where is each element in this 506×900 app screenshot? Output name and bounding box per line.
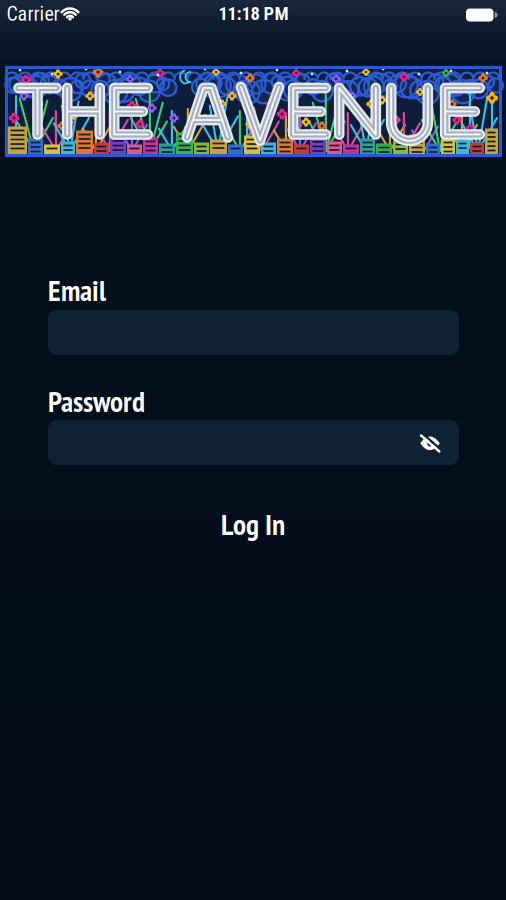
staticText: Password	[48, 382, 145, 420]
staticText: Carrier	[6, 2, 59, 26]
button[interactable]: Log In	[183, 502, 323, 546]
staticText: Email	[48, 271, 106, 309]
button[interactable]: Password	[48, 420, 459, 465]
button[interactable]: Show password	[415, 430, 445, 456]
staticText: Log In	[221, 505, 285, 543]
staticText: 11:18 PM	[218, 3, 288, 24]
